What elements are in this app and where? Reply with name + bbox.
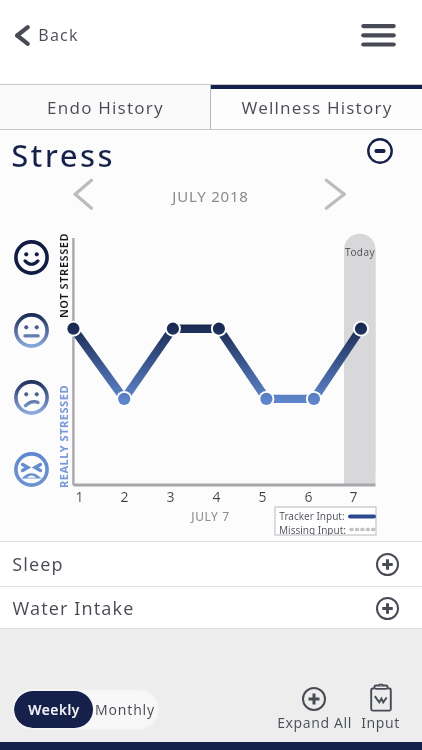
staticText: 5	[258, 487, 267, 506]
staticText: 1	[75, 487, 84, 506]
staticText: Missing Input:	[279, 523, 346, 535]
button[interactable]: Monthly	[93, 691, 157, 728]
staticText: NOT STRESSED	[55, 232, 70, 318]
button[interactable]: Water Intake	[0, 587, 422, 629]
staticText: Water Intake	[12, 596, 135, 621]
staticText: Sleep	[12, 552, 64, 577]
staticText: Expand All	[277, 713, 352, 732]
button[interactable]: Previous month	[70, 175, 97, 214]
button[interactable]: Back	[10, 19, 84, 51]
staticText: Endo History	[47, 96, 164, 119]
button[interactable]: Expand All	[276, 687, 352, 732]
staticText: Tracker Input:	[279, 509, 345, 523]
staticText: JULY 7	[191, 508, 230, 524]
staticText: Today	[345, 245, 375, 259]
staticText: Stress	[11, 134, 115, 176]
button[interactable]: Input	[355, 684, 406, 732]
staticText: Weekly	[28, 700, 80, 719]
button[interactable]: Next month	[321, 175, 349, 214]
staticText: REALLY STRESSED	[55, 384, 70, 488]
button[interactable]: Collapse	[367, 138, 393, 164]
button[interactable]: Sleep	[0, 542, 422, 586]
button[interactable]: Wellness History	[211, 85, 422, 129]
staticText: JULY 2018	[172, 186, 249, 206]
button[interactable]: Weekly	[14, 691, 93, 728]
staticText: Wellness History	[241, 96, 393, 119]
button[interactable]: Endo History	[0, 85, 211, 129]
staticText: 3	[166, 487, 175, 506]
staticText: 4	[212, 487, 221, 506]
staticText: 2	[120, 487, 129, 506]
staticText: 7	[349, 487, 358, 506]
staticText: Input	[361, 713, 400, 732]
staticText: Monthly	[95, 700, 155, 719]
staticText: 6	[304, 487, 313, 506]
button[interactable]: Menu	[358, 18, 399, 51]
staticText: Back	[38, 24, 79, 46]
